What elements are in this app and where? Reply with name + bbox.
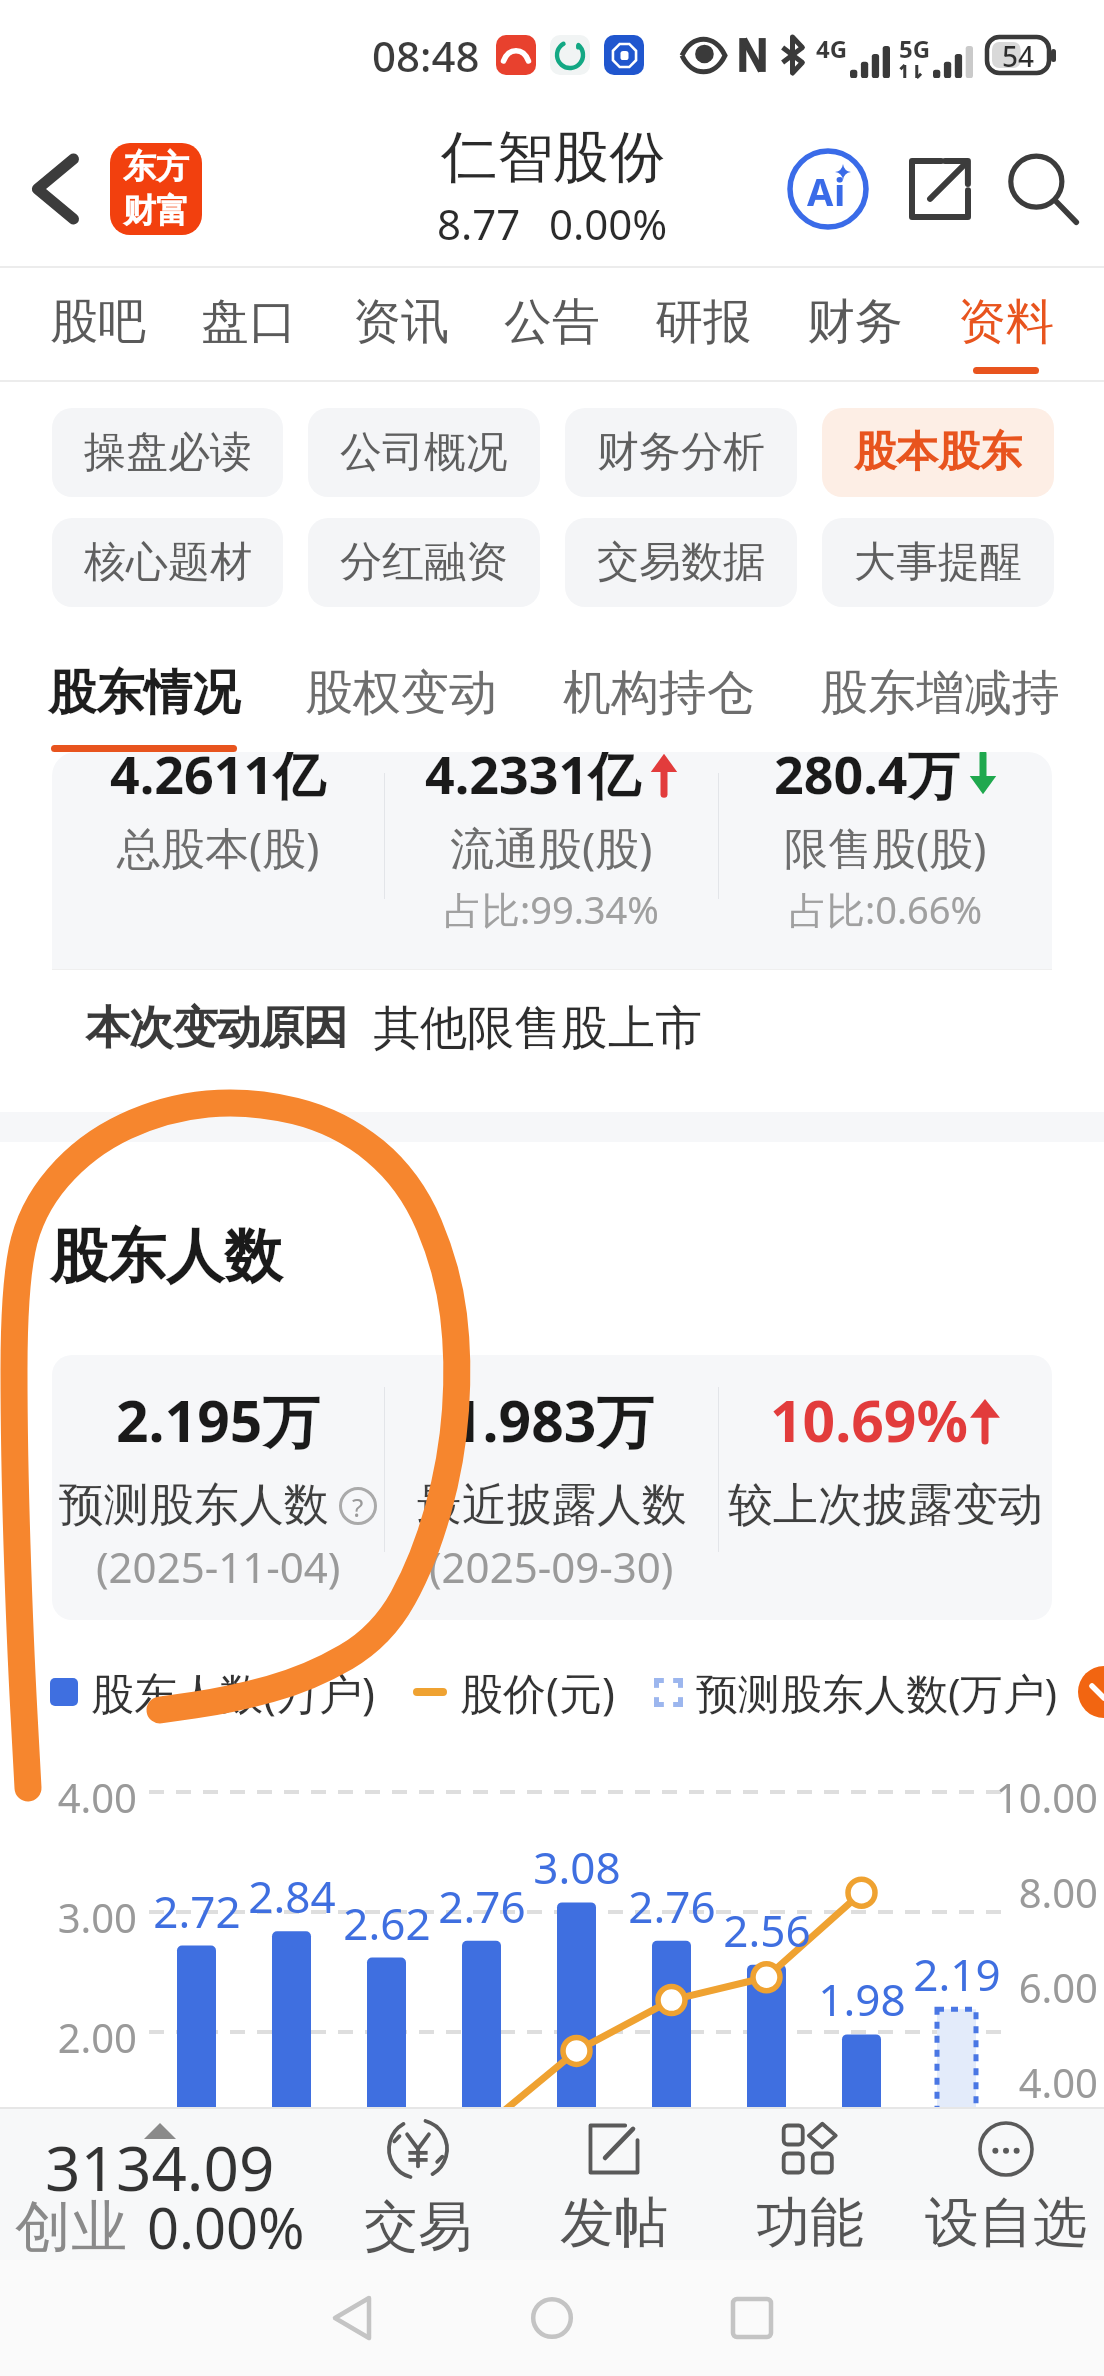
staticText: 4.2611亿 (110, 752, 326, 809)
button[interactable]: 股权变动 (305, 607, 497, 752)
staticText: 2.19 (897, 1944, 1017, 2004)
staticText: 财务分析 (597, 426, 765, 479)
staticText: 财富 (123, 190, 189, 232)
staticText: 最近披露人数 (417, 1477, 687, 1534)
button[interactable]: 研报 (655, 268, 751, 382)
staticText: 4.00 (958, 2055, 1098, 2109)
button[interactable]: 分红融资 (308, 518, 540, 607)
staticText: 本次变动原因 (86, 1000, 347, 1057)
staticText: 2.00 (0, 2010, 137, 2064)
button[interactable]: 发帖 (516, 2107, 712, 2260)
button[interactable]: AI assistant (780, 141, 876, 237)
button[interactable]: Expand (1078, 1666, 1104, 1718)
staticText: 2.72 (137, 1881, 257, 1941)
staticText: 研报 (655, 292, 751, 352)
staticText: 仁智股份 (441, 122, 665, 193)
button[interactable]: Back (252, 2260, 452, 2376)
staticText: 公告 (504, 292, 600, 352)
button[interactable]: 股本股东 (822, 408, 1054, 497)
staticText: 核心题材 (84, 536, 252, 589)
staticText: 设自选 (925, 2189, 1087, 2257)
staticText: 限售股(股) (784, 817, 987, 877)
button[interactable]: 交易 (320, 2107, 516, 2260)
staticText: 0.00% (147, 2189, 305, 2265)
staticText: 资讯 (353, 292, 449, 352)
button[interactable]: 资料 (958, 268, 1054, 382)
staticText: 2.76 (612, 1876, 732, 1936)
staticText: 54 (1002, 37, 1035, 73)
staticText: 1.983万 (450, 1381, 654, 1459)
staticText: 流通股(股) (450, 817, 653, 877)
staticText: 机构持仓 (563, 663, 755, 723)
staticText: 股东情况 (48, 663, 240, 723)
button[interactable]: 股东情况 (48, 607, 240, 752)
button[interactable]: 交易数据 (565, 518, 797, 607)
staticText: 大事提醒 (854, 536, 1022, 589)
button[interactable]: 机构持仓 (563, 607, 755, 752)
staticText: 10.00 (958, 1770, 1098, 1824)
staticText: 其他限售股上市 (373, 999, 702, 1058)
staticText: 预测股东人数 (59, 1477, 329, 1534)
staticText: 2.195万 (116, 1381, 320, 1459)
button[interactable]: Home (452, 2260, 652, 2376)
staticText: 3.00 (0, 1890, 137, 1944)
staticText: 8.77 (437, 195, 521, 252)
button[interactable]: 财务分析 (565, 408, 797, 497)
staticText: i (834, 165, 846, 217)
staticText: 3.08 (517, 1837, 637, 1897)
button[interactable]: Share (892, 141, 988, 237)
staticText: (2025-11-04) (96, 1538, 341, 1595)
button[interactable]: 设自选 (908, 2107, 1104, 2260)
button[interactable]: 操盘必读 (52, 408, 283, 497)
staticText: 2.56 (707, 1900, 827, 1960)
staticText: 资料 (958, 292, 1054, 352)
staticText: 股东增减持 (820, 663, 1060, 723)
staticText: 占比:99.34% (444, 883, 659, 935)
staticText: 股东人数(万户) (91, 1663, 375, 1722)
button[interactable]: 公告 (504, 268, 600, 382)
staticText: (2025-09-30) (429, 1538, 674, 1595)
staticText: 财务 (807, 292, 903, 352)
staticText: 5G (899, 32, 931, 65)
button[interactable]: Back (0, 110, 110, 268)
staticText: 操盘必读 (84, 426, 252, 479)
staticText: 较上次披露变动 (728, 1477, 1043, 1534)
staticText: 6.00 (958, 1960, 1098, 2014)
staticText: 创业 (15, 2192, 127, 2263)
button[interactable]: 3134.09 (0, 2107, 320, 2260)
staticText: 股本股东 (854, 426, 1022, 479)
staticText: 东方 (123, 146, 189, 188)
staticText: 分红融资 (340, 536, 508, 589)
button[interactable]: Search (988, 134, 1098, 244)
button[interactable]: East Money (110, 143, 202, 235)
button[interactable]: 股东增减持 (820, 607, 1060, 752)
button[interactable]: 股吧 (50, 268, 146, 382)
staticText: 功能 (756, 2189, 864, 2257)
staticText: A (807, 165, 834, 217)
button[interactable]: 大事提醒 (822, 518, 1054, 607)
staticText: 占比:0.66% (789, 883, 983, 935)
button[interactable]: 公司概况 (308, 408, 540, 497)
button[interactable]: 功能 (712, 2107, 908, 2260)
staticText: 4G (816, 32, 848, 65)
button[interactable]: 本次变动原因 (52, 970, 1052, 1087)
staticText: 0.00% (549, 195, 668, 252)
staticText: ? (352, 1489, 364, 1524)
staticText: 股权变动 (305, 663, 497, 723)
staticText: 公司概况 (340, 426, 508, 479)
button[interactable]: 资讯 (353, 268, 449, 382)
staticText: 4.00 (0, 1770, 137, 1824)
staticText: 总股本(股) (117, 817, 320, 877)
staticText: 股价(元) (460, 1663, 615, 1722)
staticText: 股吧 (50, 292, 146, 352)
staticText: 4.2331亿 (425, 752, 641, 809)
staticText: 08:48 (372, 27, 480, 84)
button[interactable]: 盘口 (201, 268, 297, 382)
button[interactable]: 财务 (807, 268, 903, 382)
staticText: 3134.09 (45, 2125, 275, 2209)
staticText: 2.62 (327, 1893, 447, 1953)
button[interactable]: 核心题材 (52, 518, 283, 607)
staticText: 交易数据 (597, 536, 765, 589)
staticText: 盘口 (201, 292, 297, 352)
button[interactable]: Recents (652, 2260, 852, 2376)
